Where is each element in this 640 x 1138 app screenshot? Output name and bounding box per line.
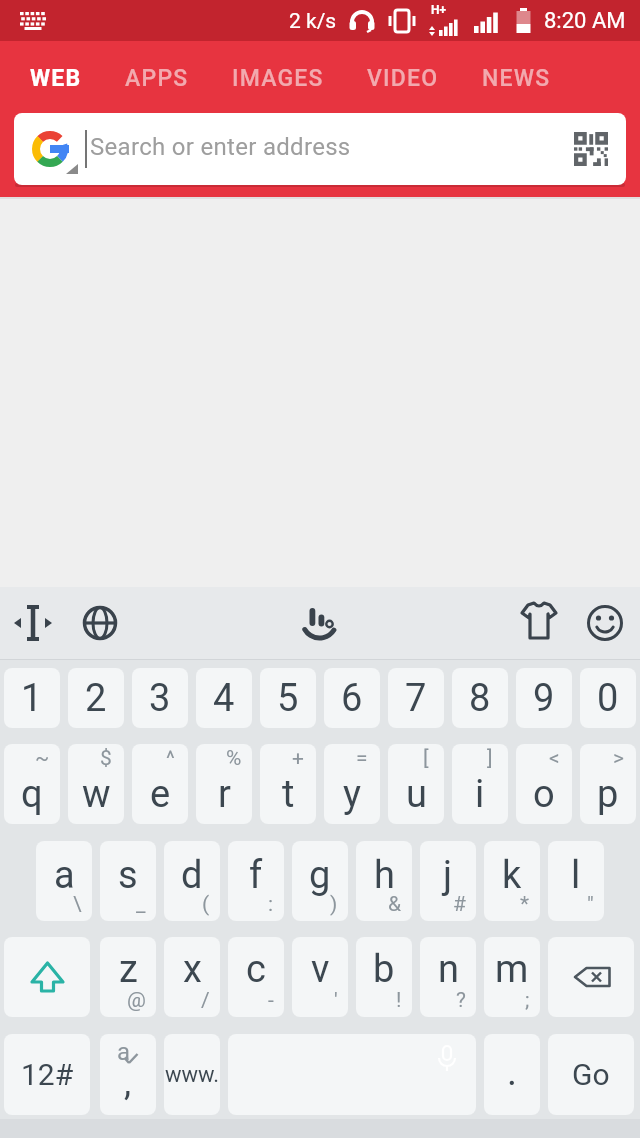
- button[interactable]: Go: [548, 1034, 634, 1115]
- staticText: _: [136, 892, 146, 917]
- button[interactable]: g: [292, 841, 348, 921]
- button[interactable]: [: [388, 744, 444, 824]
- staticText: t: [282, 772, 295, 817]
- button[interactable]: k: [484, 841, 540, 921]
- staticText: 4: [213, 676, 235, 721]
- staticText: :: [268, 892, 274, 917]
- staticText: s: [118, 853, 138, 898]
- button[interactable]: ]: [452, 744, 508, 824]
- button[interactable]: .: [484, 1034, 540, 1115]
- button[interactable]: [11, 601, 55, 645]
- staticText: %: [226, 746, 242, 771]
- button[interactable]: c: [228, 937, 284, 1017]
- button[interactable]: [296, 599, 344, 647]
- staticText: ): [330, 892, 338, 917]
- button[interactable]: 12#: [4, 1034, 90, 1115]
- staticText: w: [82, 772, 111, 817]
- button[interactable]: [4, 937, 90, 1017]
- button[interactable]: n: [420, 937, 476, 1017]
- staticText: k: [502, 853, 522, 898]
- staticText: 2: [85, 676, 107, 721]
- button[interactable]: 0: [580, 668, 636, 728]
- button[interactable]: h: [356, 841, 412, 921]
- staticText: [: [423, 746, 429, 771]
- button[interactable]: l: [548, 841, 604, 921]
- staticText: 6: [341, 676, 363, 721]
- button[interactable]: j: [420, 841, 476, 921]
- button[interactable]: www.: [164, 1034, 220, 1115]
- staticText: y: [343, 772, 361, 817]
- button[interactable]: v: [292, 937, 348, 1017]
- button[interactable]: VIDEO: [367, 65, 439, 92]
- staticText: 7: [405, 676, 427, 721]
- button[interactable]: ~: [4, 744, 60, 824]
- button[interactable]: a: [100, 1034, 156, 1115]
- button[interactable]: [78, 601, 122, 645]
- button[interactable]: 2: [68, 668, 124, 728]
- button[interactable]: IMAGES: [232, 65, 324, 92]
- button[interactable]: ^: [132, 744, 188, 824]
- staticText: 2 k/s: [289, 9, 337, 34]
- staticText: $: [100, 746, 112, 771]
- button[interactable]: +: [260, 744, 316, 824]
- button[interactable]: d: [164, 841, 220, 921]
- staticText: c: [246, 947, 266, 992]
- staticText: IMAGES: [232, 65, 324, 92]
- staticText: VIDEO: [367, 65, 439, 92]
- button[interactable]: APPS: [125, 65, 189, 92]
- staticText: m: [495, 947, 529, 992]
- staticText: 8: [469, 676, 491, 721]
- staticText: a: [54, 853, 75, 898]
- staticText: a: [117, 1038, 131, 1066]
- button[interactable]: x: [164, 937, 220, 1017]
- button[interactable]: WEB: [30, 65, 82, 92]
- staticText: j: [443, 853, 453, 898]
- staticText: p: [597, 772, 619, 817]
- button[interactable]: <: [516, 744, 572, 824]
- staticText: <: [549, 746, 560, 771]
- staticText: f: [249, 853, 263, 898]
- staticText: NEWS: [482, 65, 551, 92]
- button[interactable]: $: [68, 744, 124, 824]
- button[interactable]: a: [36, 841, 92, 921]
- staticText: i: [475, 772, 485, 817]
- button[interactable]: 4: [196, 668, 252, 728]
- staticText: ~: [35, 746, 50, 771]
- button[interactable]: [583, 601, 627, 645]
- button[interactable]: f: [228, 841, 284, 921]
- staticText: 3: [149, 676, 171, 721]
- button[interactable]: 9: [516, 668, 572, 728]
- button[interactable]: z: [100, 937, 156, 1017]
- staticText: /: [201, 988, 210, 1013]
- staticText: -: [268, 988, 274, 1013]
- staticText: b: [373, 947, 395, 992]
- button[interactable]: 5: [260, 668, 316, 728]
- button[interactable]: Search or enter address: [14, 113, 626, 185]
- button[interactable]: %: [196, 744, 252, 824]
- button[interactable]: 8: [452, 668, 508, 728]
- button[interactable]: 7: [388, 668, 444, 728]
- staticText: Go: [572, 1057, 610, 1092]
- button[interactable]: NEWS: [482, 65, 551, 92]
- button[interactable]: b: [356, 937, 412, 1017]
- button[interactable]: [517, 601, 561, 645]
- staticText: >: [613, 746, 624, 771]
- staticText: g: [309, 853, 331, 898]
- staticText: 8:20 AM: [544, 8, 626, 34]
- staticText: q: [21, 772, 43, 817]
- button[interactable]: =: [324, 744, 380, 824]
- button[interactable]: [548, 937, 634, 1017]
- staticText: .: [507, 1050, 518, 1095]
- button[interactable]: 1: [4, 668, 60, 728]
- button[interactable]: s: [100, 841, 156, 921]
- staticText: ?: [456, 988, 466, 1013]
- staticText: x: [183, 947, 202, 992]
- staticText: #: [453, 892, 466, 917]
- button[interactable]: 3: [132, 668, 188, 728]
- button[interactable]: 6: [324, 668, 380, 728]
- staticText: www.: [165, 1062, 220, 1088]
- button[interactable]: m: [484, 937, 540, 1017]
- button[interactable]: >: [580, 744, 636, 824]
- staticText: ^: [166, 746, 175, 771]
